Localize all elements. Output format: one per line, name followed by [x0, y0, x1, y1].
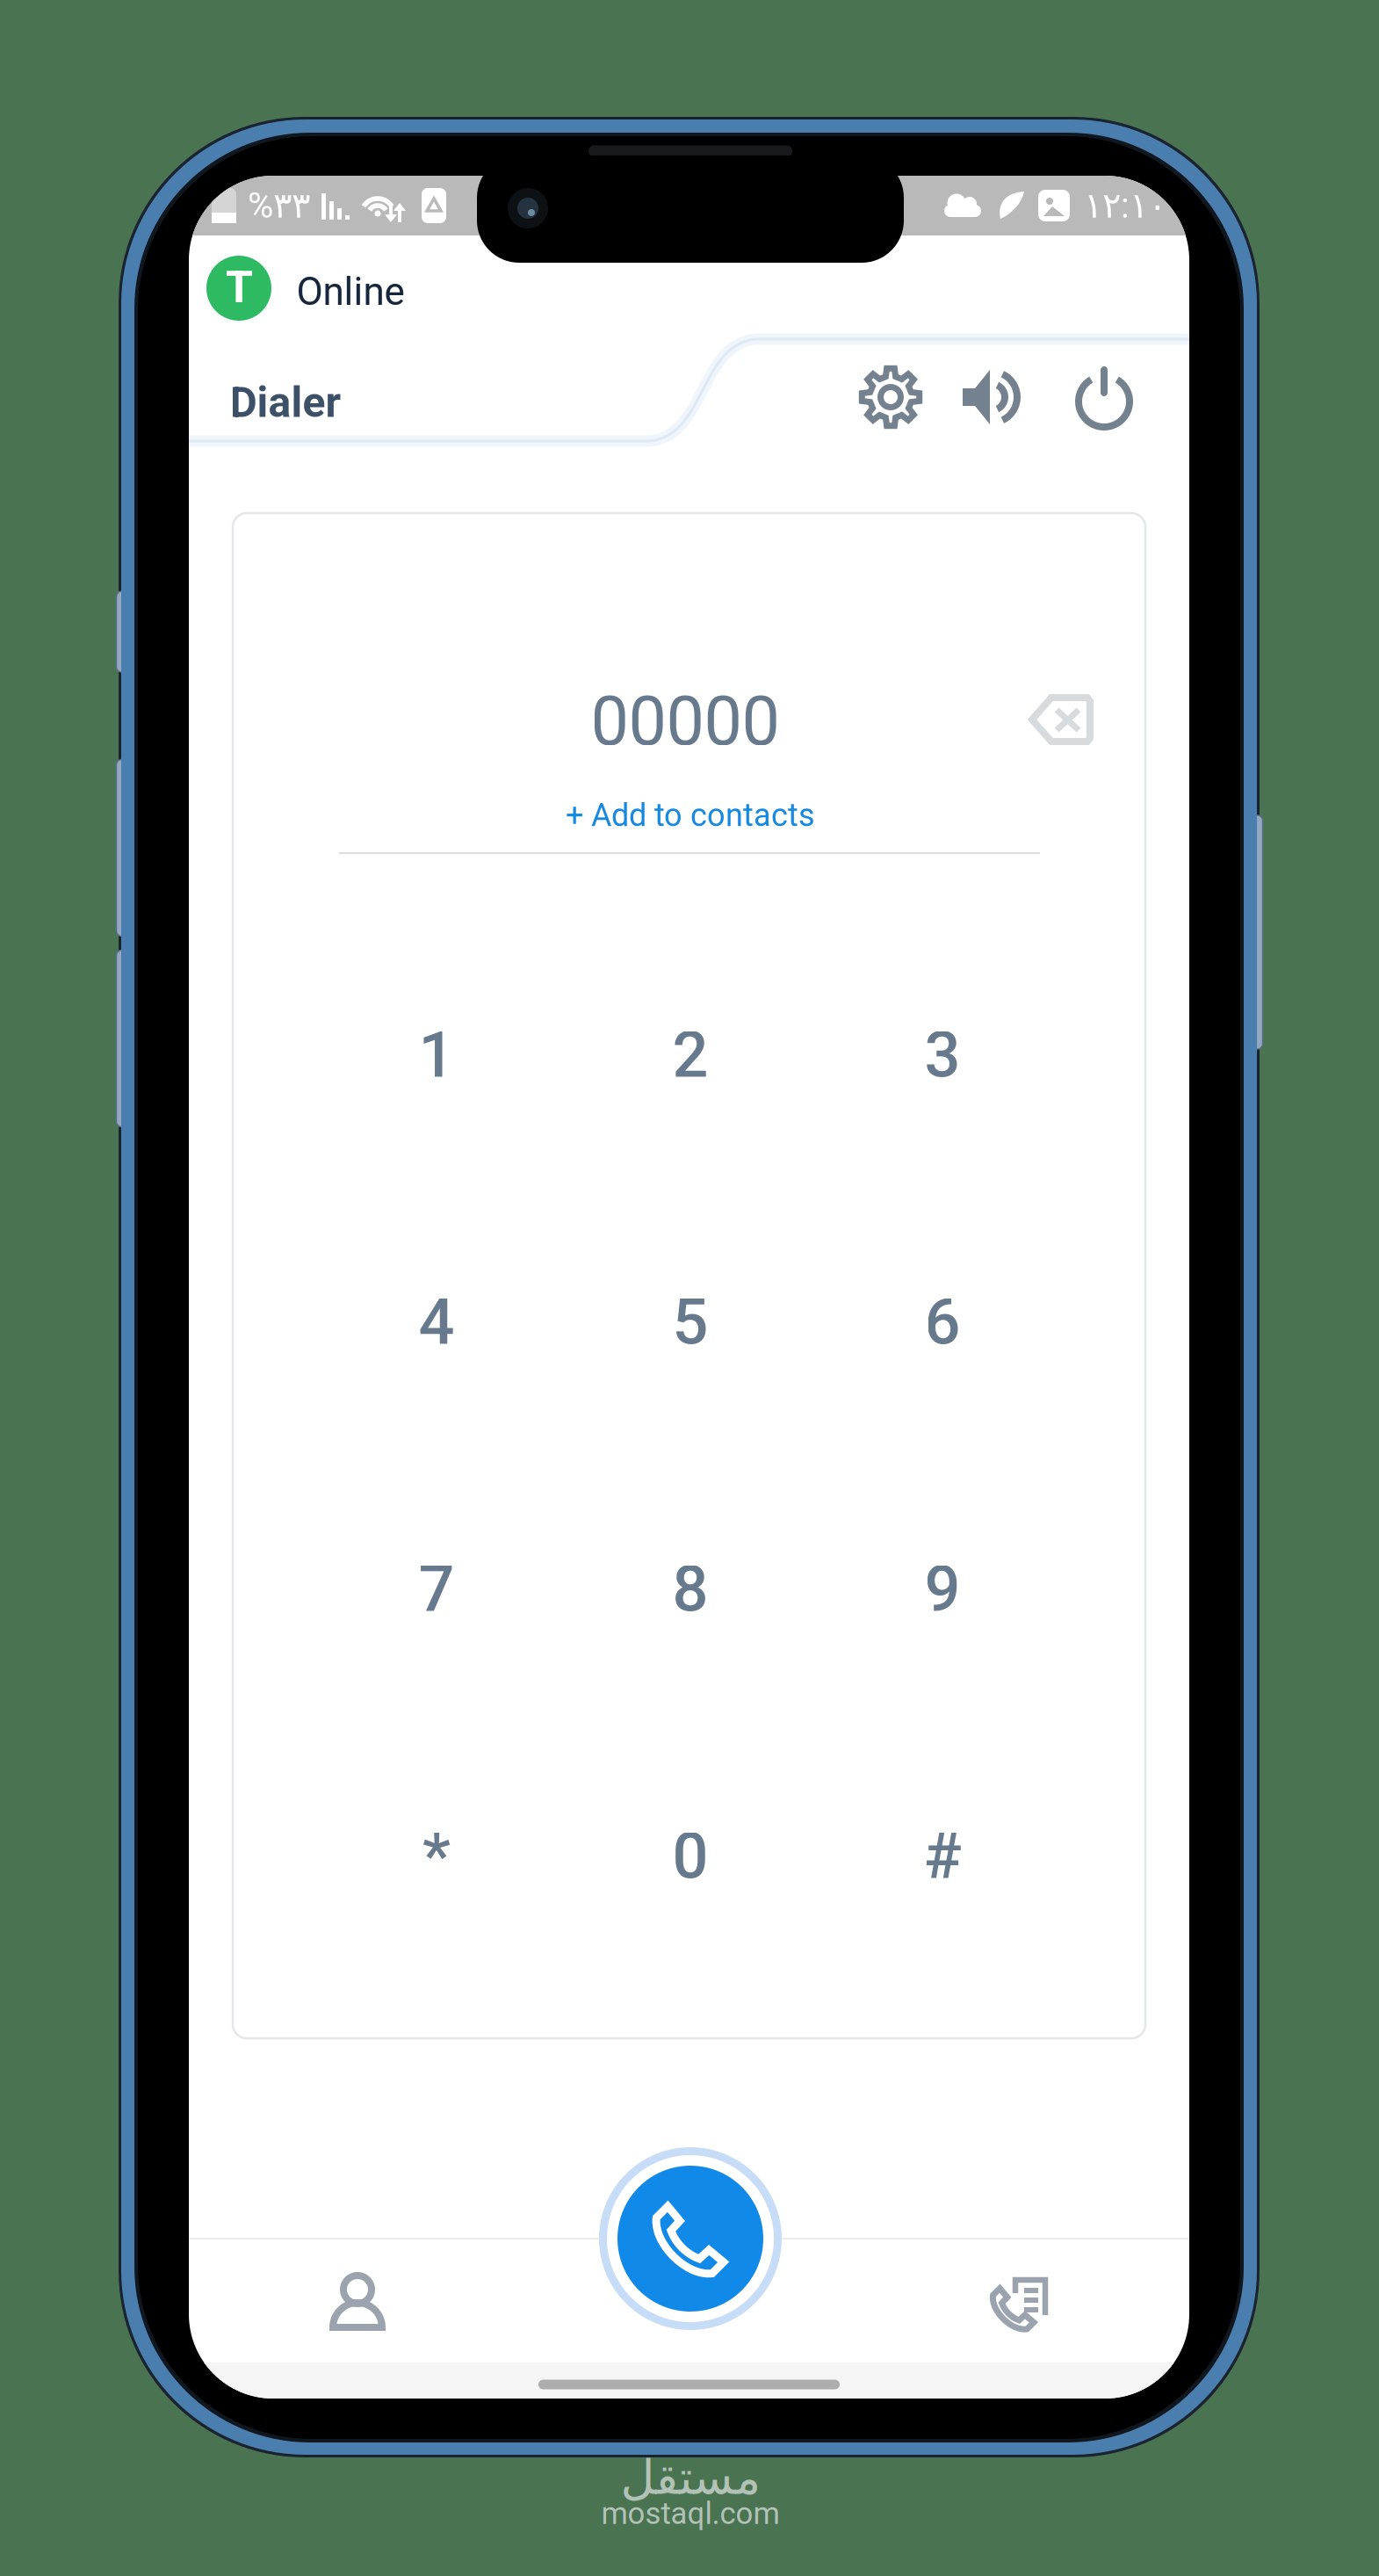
- button[interactable]: 0: [563, 1723, 818, 1990]
- button[interactable]: 4: [309, 1189, 564, 1456]
- button[interactable]: Call: [599, 2147, 782, 2330]
- button[interactable]: *: [309, 1723, 564, 1990]
- staticText: + Add to contacts: [566, 797, 815, 834]
- button[interactable]: Speaker: [948, 348, 1046, 446]
- staticText: 7: [419, 1552, 455, 1626]
- button[interactable]: 6: [815, 1189, 1070, 1456]
- staticText: 0: [672, 1819, 708, 1894]
- staticText: 1: [419, 1018, 455, 1092]
- button[interactable]: Settings: [841, 348, 940, 446]
- staticText: 8: [672, 1552, 708, 1626]
- staticText: 2: [672, 1018, 708, 1092]
- button[interactable]: 1: [309, 922, 564, 1189]
- button[interactable]: Delete: [1008, 667, 1114, 772]
- staticText: مستقل: [620, 2450, 761, 2505]
- staticText: %٣٣: [248, 185, 310, 226]
- button[interactable]: 3: [815, 922, 1070, 1189]
- button[interactable]: Recent calls: [877, 2226, 1166, 2377]
- staticText: ١٢:١٠: [1084, 185, 1166, 226]
- button[interactable]: #: [815, 1723, 1070, 1990]
- button[interactable]: Power: [1055, 348, 1153, 446]
- staticText: #: [924, 1819, 961, 1894]
- staticText: 9: [924, 1552, 960, 1626]
- button[interactable]: 9: [815, 1456, 1070, 1723]
- staticText: 5: [672, 1285, 708, 1359]
- button[interactable]: 7: [309, 1456, 564, 1723]
- staticText: Dialer: [230, 378, 341, 427]
- button[interactable]: 5: [563, 1189, 818, 1456]
- button[interactable]: 2: [563, 922, 818, 1189]
- button[interactable]: + Add to contacts: [560, 792, 820, 839]
- staticText: Online: [296, 269, 404, 314]
- staticText: mostaql.com: [601, 2496, 780, 2531]
- button[interactable]: Contacts: [213, 2226, 502, 2377]
- button[interactable]: 8: [563, 1456, 818, 1723]
- staticText: 3: [924, 1018, 960, 1092]
- staticText: 00000: [591, 682, 780, 761]
- staticText: *: [422, 1819, 451, 1894]
- staticText: 6: [924, 1285, 960, 1359]
- staticText: 4: [419, 1285, 455, 1359]
- button[interactable]: Dialer: [224, 378, 347, 427]
- staticText: T: [225, 261, 253, 313]
